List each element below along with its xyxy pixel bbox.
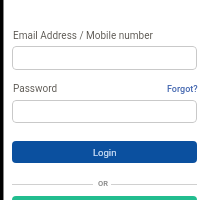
staticText: Login bbox=[93, 147, 117, 158]
button[interactable] bbox=[12, 46, 197, 70]
button[interactable]: Forgot? bbox=[166, 84, 198, 95]
staticText: Password bbox=[13, 83, 58, 95]
button[interactable]: Login bbox=[12, 141, 197, 163]
button[interactable] bbox=[12, 196, 197, 200]
button[interactable] bbox=[12, 100, 197, 123]
staticText: OR bbox=[98, 179, 108, 188]
staticText: Forgot? bbox=[167, 84, 198, 95]
staticText: Email Address / Mobile number bbox=[13, 30, 153, 42]
